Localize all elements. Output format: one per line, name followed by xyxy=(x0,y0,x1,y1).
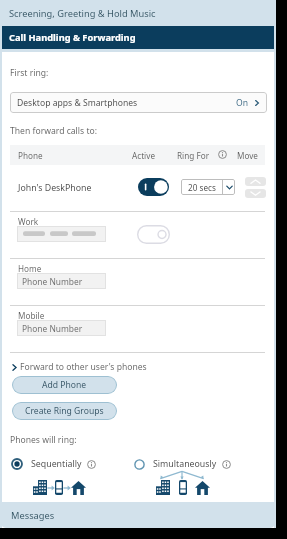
staticText: 20 secs xyxy=(188,182,216,193)
staticText: John's DeskPhone xyxy=(18,182,92,194)
staticText: Move xyxy=(237,150,258,161)
staticText: Work xyxy=(18,216,39,227)
staticText: Forward to other user's phones xyxy=(20,361,147,373)
button[interactable]: Simultaneously xyxy=(134,458,231,470)
button[interactable]: 20 secs xyxy=(181,179,235,195)
staticText: Phones will ring: xyxy=(10,434,77,446)
button[interactable]: Active toggle off xyxy=(137,225,170,244)
staticText: Call Handling & Forwarding xyxy=(9,31,136,44)
button[interactable] xyxy=(17,226,106,242)
button[interactable]: Phone Number xyxy=(17,320,106,336)
staticText: Phone Number xyxy=(22,323,83,334)
button[interactable]: Active toggle on xyxy=(138,178,169,196)
staticText: Then forward calls to: xyxy=(10,125,97,137)
staticText: Phone xyxy=(18,150,43,161)
staticText: Sequentially xyxy=(31,458,82,470)
staticText: On xyxy=(236,97,249,109)
staticText: Screening, Greeting & Hold Music xyxy=(9,7,156,20)
button[interactable]: Move down xyxy=(245,189,266,198)
staticText: Home xyxy=(18,263,42,274)
button[interactable]: Screening, Greeting & Hold Music xyxy=(0,0,276,26)
staticText: First ring: xyxy=(10,67,49,79)
button[interactable]: Call Handling & Forwarding xyxy=(2,26,274,49)
button[interactable]: Move up xyxy=(245,177,266,186)
staticText: Active xyxy=(132,150,156,161)
button[interactable]: Desktop apps & Smartphones xyxy=(10,92,267,113)
staticText: Create Ring Groups xyxy=(25,405,104,417)
staticText: Messages xyxy=(11,509,55,522)
button[interactable]: Sequentially xyxy=(11,458,96,470)
staticText: Simultaneously xyxy=(153,458,217,470)
button[interactable]: Phone Number xyxy=(17,273,106,289)
button[interactable]: Forward to other user's phones xyxy=(10,361,147,373)
staticText: Add Phone xyxy=(42,379,87,391)
button[interactable]: Messages xyxy=(1,502,275,528)
button[interactable]: Add Phone xyxy=(12,376,117,394)
staticText: Ring For xyxy=(177,150,210,161)
staticText: Mobile xyxy=(18,310,45,321)
staticText: Desktop apps & Smartphones xyxy=(17,97,138,109)
staticText: Phone Number xyxy=(22,276,83,287)
button[interactable]: Create Ring Groups xyxy=(12,402,117,420)
